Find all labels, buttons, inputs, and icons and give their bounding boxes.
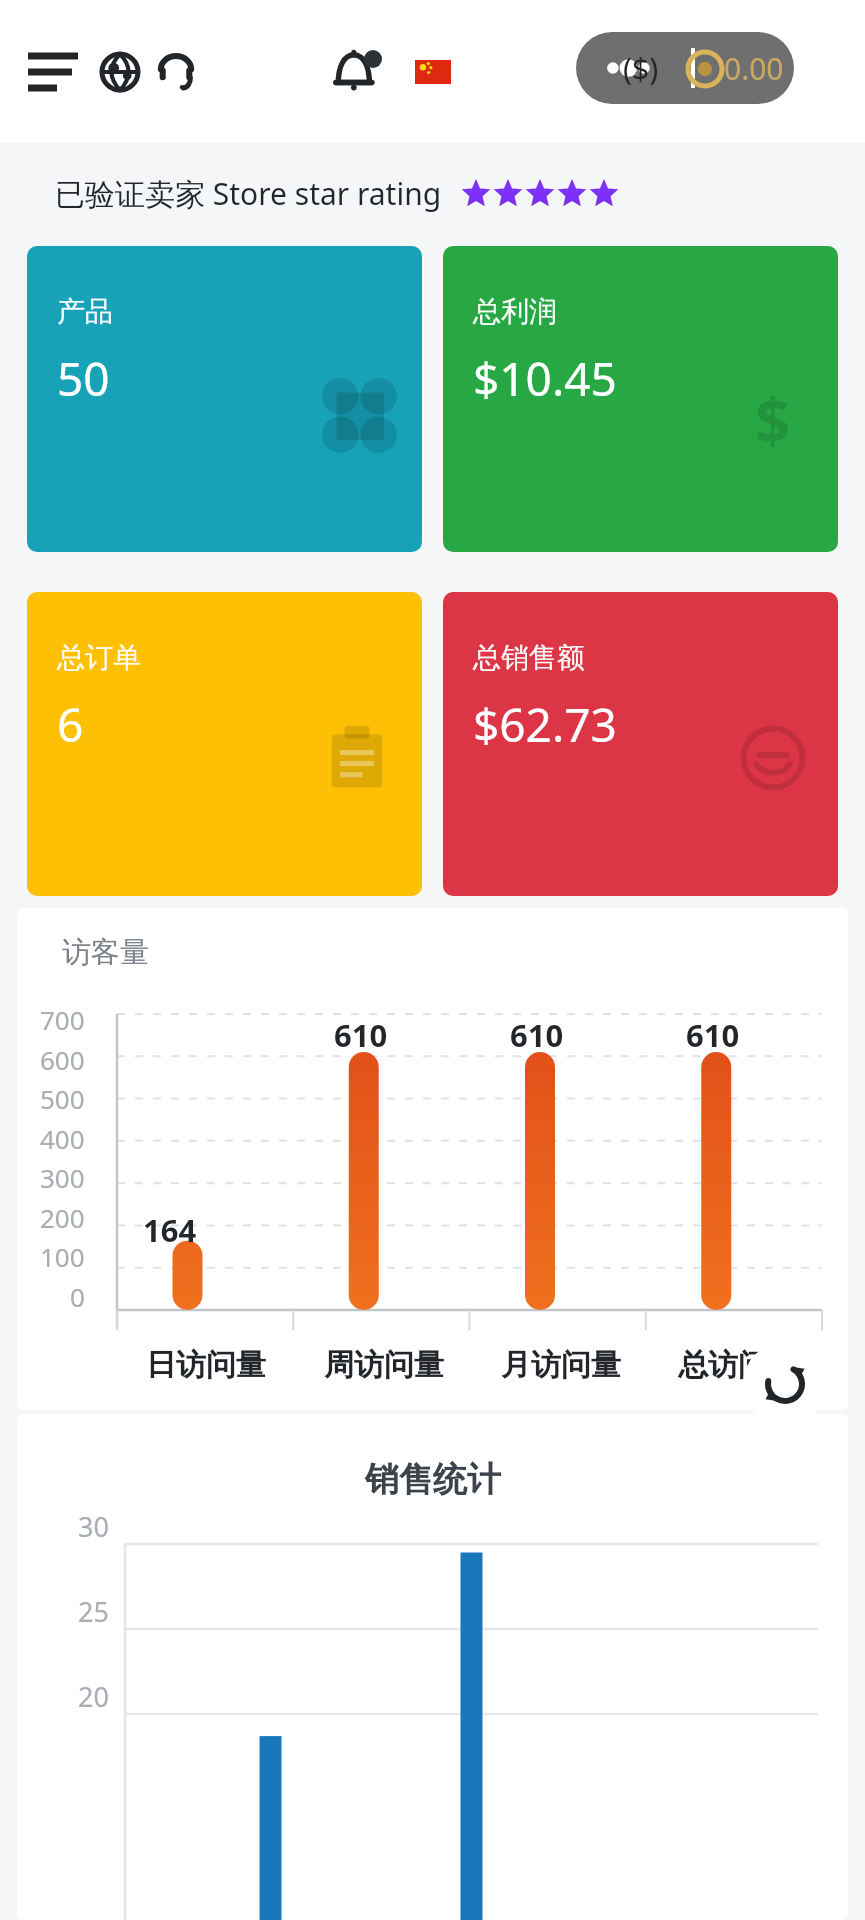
- staticText: 25: [78, 1593, 109, 1630]
- staticText: 销售统计: [365, 1458, 501, 1501]
- staticText: 610: [510, 1014, 564, 1056]
- staticText: 20: [78, 1678, 109, 1715]
- staticText: 总销售额: [473, 640, 585, 675]
- staticText: 0: [70, 1279, 85, 1314]
- staticText: 200: [40, 1200, 85, 1235]
- button[interactable]: 总销售额: [443, 592, 838, 896]
- staticText: 700: [40, 1002, 85, 1037]
- button[interactable]: Refresh: [743, 1342, 827, 1426]
- button[interactable]: Language China: [402, 38, 464, 106]
- staticText: 30: [78, 1508, 109, 1545]
- button[interactable]: Notifications: [330, 44, 386, 100]
- staticText: $62.73: [473, 693, 617, 756]
- staticText: 600: [40, 1042, 85, 1077]
- staticText: $: [755, 378, 791, 448]
- staticText: ($): [623, 48, 659, 89]
- staticText: 产品: [57, 294, 113, 329]
- staticText: 610: [686, 1014, 740, 1056]
- button[interactable]: Menu: [22, 44, 84, 100]
- staticText: 周访问量: [324, 1346, 444, 1384]
- staticText: 月访问量: [501, 1346, 621, 1384]
- staticText: 访客量: [62, 934, 149, 971]
- staticText: 0.00: [724, 48, 784, 89]
- button[interactable]: 产品: [27, 246, 422, 552]
- staticText: 已验证卖家 Store star rating: [55, 173, 442, 214]
- button[interactable]: 总订单: [27, 592, 422, 896]
- staticText: 总利润: [473, 294, 557, 329]
- button[interactable]: Language: [96, 48, 144, 96]
- staticText: 500: [40, 1081, 85, 1116]
- staticText: 总访问量: [678, 1346, 798, 1384]
- staticText: 164: [143, 1209, 197, 1251]
- staticText: 300: [40, 1160, 85, 1195]
- staticText: 400: [40, 1121, 85, 1156]
- button[interactable]: Support: [152, 48, 200, 96]
- staticText: $10.45: [473, 347, 617, 410]
- staticText: 50: [57, 347, 110, 410]
- staticText: 总订单: [57, 640, 141, 675]
- staticText: 610: [334, 1014, 388, 1056]
- button[interactable]: 已验证卖家 Store star rating: [0, 151, 865, 236]
- staticText: 日访问量: [146, 1346, 266, 1384]
- staticText: 6: [57, 693, 84, 756]
- staticText: 100: [40, 1239, 85, 1274]
- button[interactable]: $: [443, 246, 838, 552]
